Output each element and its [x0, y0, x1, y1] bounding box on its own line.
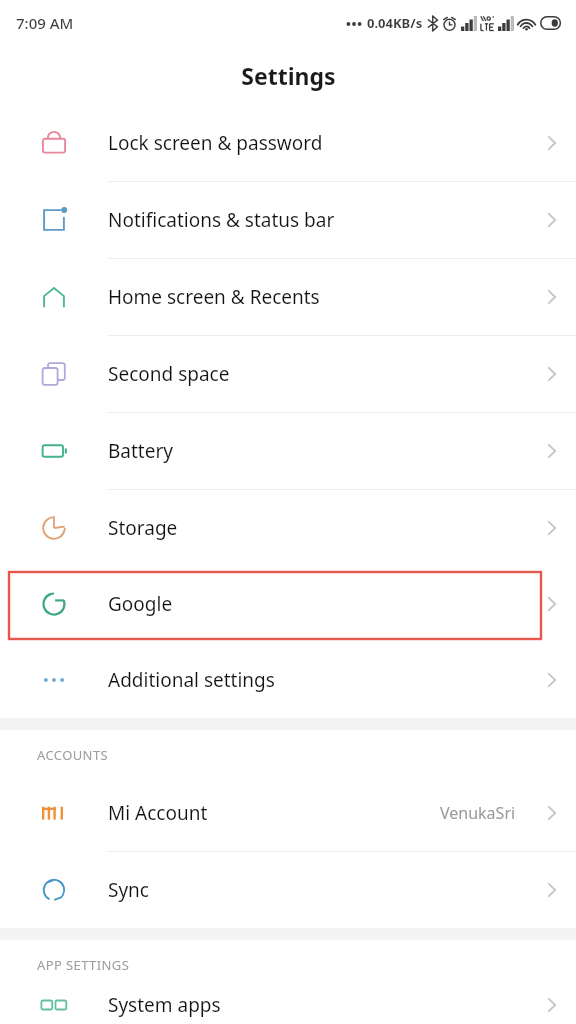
staticText: Google — [108, 591, 528, 617]
button[interactable]: Sync — [0, 852, 576, 928]
button[interactable]: Mi Account — [0, 775, 576, 851]
staticText: Sync — [108, 877, 528, 903]
staticText: Second space — [108, 361, 528, 387]
staticText: Additional settings — [108, 667, 528, 693]
staticText: APP SETTINGS — [37, 956, 130, 974]
staticText: Battery — [108, 438, 528, 464]
staticText: Home screen & Recents — [108, 284, 528, 310]
staticText: ACCOUNTS — [37, 746, 109, 764]
staticText: Notifications & status bar — [108, 207, 528, 233]
staticText: 0.04KB/s — [367, 14, 423, 32]
button[interactable]: Home screen & Recents — [0, 259, 576, 335]
button[interactable]: Storage — [0, 490, 576, 566]
button[interactable]: System apps — [0, 985, 576, 1024]
staticText: 7:09 AM — [16, 13, 74, 33]
staticText: Mi Account — [108, 800, 440, 826]
button[interactable]: Notifications & status bar — [0, 182, 576, 258]
button[interactable]: Google — [0, 566, 576, 642]
button[interactable]: Battery — [0, 413, 576, 489]
staticText: Storage — [108, 515, 528, 541]
staticText: VenukaSri — [440, 802, 516, 824]
button[interactable]: Second space — [0, 336, 576, 412]
staticText: Lock screen & password — [108, 130, 528, 156]
staticText: Settings — [241, 60, 336, 91]
staticText: System apps — [108, 992, 528, 1018]
button[interactable]: Additional settings — [0, 642, 576, 718]
button[interactable]: Lock screen & password — [0, 105, 576, 181]
